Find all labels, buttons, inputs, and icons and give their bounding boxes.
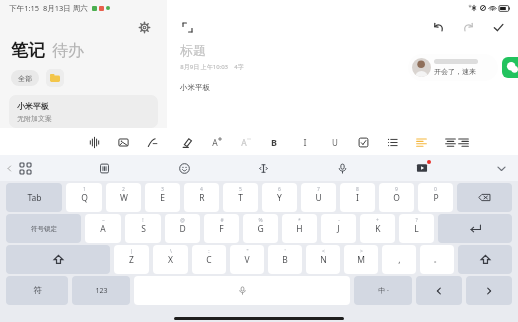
staticText: A <box>100 223 106 235</box>
button[interactable]: Undo <box>428 17 448 37</box>
button[interactable]: Image <box>115 134 131 150</box>
button[interactable]: Hide keyboard <box>490 157 512 179</box>
button[interactable]: Done <box>488 17 508 37</box>
button[interactable]: Bullet list <box>384 134 400 150</box>
button[interactable]: 笔记 <box>11 40 45 61</box>
button[interactable]: Folders <box>46 69 64 87</box>
button[interactable]: Y <box>262 183 297 212</box>
staticText: K <box>375 223 381 235</box>
button[interactable]: 符 <box>6 276 68 305</box>
button[interactable]: Cursor <box>252 157 274 179</box>
staticText: O <box>393 192 400 204</box>
button[interactable]: 全部 <box>11 70 39 86</box>
button[interactable]: R <box>184 183 219 212</box>
button[interactable]: Draw <box>144 134 160 150</box>
button[interactable]: Q <box>66 183 102 212</box>
button[interactable]: L <box>399 214 434 243</box>
button[interactable]: Voice <box>86 134 102 150</box>
button[interactable]: 符号锁定 <box>6 214 81 243</box>
button[interactable]: 中 · <box>354 276 412 305</box>
staticText: 9 <box>395 186 398 193</box>
button[interactable]: Apps <box>14 157 36 179</box>
button[interactable]: S <box>125 214 161 243</box>
button[interactable]: Back <box>2 161 16 175</box>
button[interactable]: A <box>85 214 121 243</box>
button[interactable]: Checkbox <box>355 134 371 150</box>
button[interactable]: Tab <box>6 183 62 212</box>
button[interactable]: Next <box>466 276 512 305</box>
button[interactable]: 开会了，速来 <box>408 54 498 81</box>
button[interactable]: O <box>379 183 414 212</box>
staticText: 无附加文案 <box>17 114 52 122</box>
button[interactable]: Backspace <box>457 183 512 212</box>
staticText: 123 <box>95 286 108 296</box>
button[interactable]: W <box>106 183 141 212</box>
button[interactable]: G <box>243 214 278 243</box>
button[interactable]: Highlight <box>179 134 195 150</box>
button[interactable]: Settings <box>133 16 155 38</box>
staticText: ! <box>142 217 144 224</box>
staticText: E <box>160 192 165 204</box>
button[interactable]: WeChat <box>502 57 518 78</box>
staticText: 0 <box>434 186 437 193</box>
button[interactable]: Align center <box>442 134 458 150</box>
staticText: 下午1:15 8月13日 周六 <box>9 3 88 13</box>
button[interactable]: Shift <box>6 245 110 274</box>
button[interactable]: V <box>230 245 264 274</box>
staticText: 8 <box>356 186 359 193</box>
button[interactable]: Shift <box>458 245 512 274</box>
button[interactable]: X <box>153 245 188 274</box>
staticText: 待办 <box>52 41 84 61</box>
button[interactable]: 。 <box>420 245 454 274</box>
button[interactable]: Space <box>134 276 350 305</box>
button[interactable]: 小米平板 <box>9 95 158 128</box>
button[interactable]: Z <box>114 245 149 274</box>
button[interactable]: J <box>321 214 356 243</box>
staticText: 标题 <box>180 42 206 58</box>
button[interactable]: Align left <box>413 134 429 150</box>
button[interactable]: Previous <box>416 276 462 305</box>
staticText: Tab <box>27 192 42 204</box>
button[interactable]: I <box>340 183 375 212</box>
button[interactable]: E <box>145 183 180 212</box>
staticText: - <box>338 217 340 224</box>
button[interactable]: N <box>306 245 340 274</box>
staticText: \ <box>170 248 172 255</box>
staticText: M <box>357 254 365 266</box>
staticText: + <box>376 217 379 224</box>
button[interactable]: Emoji <box>173 157 195 179</box>
button[interactable]: M <box>344 245 378 274</box>
staticText: @ <box>180 217 185 224</box>
button[interactable]: Media <box>411 157 433 179</box>
button[interactable]: , <box>382 245 416 274</box>
button[interactable]: D <box>165 214 200 243</box>
button[interactable]: U <box>301 183 336 212</box>
button[interactable]: Enter <box>438 214 512 243</box>
button[interactable]: Italic <box>297 134 313 150</box>
button[interactable]: Decrease font <box>237 134 253 150</box>
button[interactable]: Clipboard <box>93 157 115 179</box>
button[interactable]: P <box>418 183 453 212</box>
button[interactable]: T <box>223 183 258 212</box>
button[interactable]: Expand <box>177 17 197 37</box>
staticText: P <box>433 192 439 204</box>
staticText: Q <box>81 192 88 204</box>
staticText: 4 <box>200 186 203 193</box>
button[interactable]: 123 <box>72 276 130 305</box>
staticText: H <box>296 223 303 235</box>
staticText: 符 <box>33 285 42 296</box>
button[interactable]: Redo <box>458 17 478 37</box>
button[interactable]: K <box>360 214 395 243</box>
button[interactable]: F <box>204 214 239 243</box>
staticText: A <box>241 137 247 148</box>
button[interactable]: C <box>192 245 226 274</box>
button[interactable]: B <box>268 245 302 274</box>
button[interactable]: Underline <box>326 134 342 150</box>
button[interactable]: Increase font <box>208 134 224 150</box>
button[interactable]: 待办 <box>52 41 84 61</box>
button[interactable]: H <box>282 214 317 243</box>
button[interactable]: Voice input <box>331 157 353 179</box>
staticText: U <box>315 192 322 204</box>
button[interactable]: Bold <box>266 134 282 150</box>
staticText: C <box>206 254 212 266</box>
